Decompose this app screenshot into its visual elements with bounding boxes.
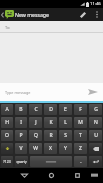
button[interactable]: B: [15, 104, 27, 115]
staticText: S: [64, 132, 67, 139]
button[interactable]: Type message: [0, 83, 82, 101]
staticText: B: [19, 106, 23, 113]
button[interactable]: N: [89, 117, 102, 128]
button[interactable]: G: [89, 104, 102, 115]
staticText: New message: [15, 11, 49, 18]
button[interactable]: X: [44, 143, 57, 154]
staticText: Q: [34, 132, 38, 139]
staticText: V: [19, 145, 23, 152]
staticText: D: [49, 106, 53, 113]
button[interactable]: Home: [38, 168, 64, 183]
button[interactable]: .: [74, 156, 87, 167]
staticText: P: [19, 132, 23, 139]
button[interactable]: U: [89, 130, 102, 141]
staticText: Y: [64, 145, 67, 152]
button[interactable]: To:: [0, 21, 103, 33]
staticText: R: [49, 132, 53, 139]
staticText: U: [94, 132, 98, 139]
button[interactable]: Shift: [1, 143, 13, 154]
button[interactable]: M: [74, 117, 87, 128]
staticText: C: [34, 106, 38, 113]
button[interactable]: qwerty: [15, 156, 28, 167]
button[interactable]: W: [29, 143, 42, 154]
button[interactable]: Q: [29, 130, 42, 141]
staticText: M: [78, 119, 83, 126]
button[interactable]: Hide keyboard: [86, 168, 103, 183]
staticText: I: [20, 119, 22, 126]
button[interactable]: Y: [59, 143, 72, 154]
button[interactable]: P: [15, 130, 27, 141]
staticText: .: [80, 158, 82, 165]
button[interactable]: K: [44, 117, 57, 128]
staticText: G: [94, 106, 98, 113]
button[interactable]: T: [74, 130, 87, 141]
staticText: Z: [79, 145, 82, 152]
button[interactable]: D: [44, 104, 57, 115]
staticText: ?123: [3, 159, 11, 164]
button[interactable]: O: [1, 130, 13, 141]
button[interactable]: Backspace: [89, 143, 102, 154]
button[interactable]: F: [74, 104, 87, 115]
button[interactable]: L: [59, 117, 72, 128]
staticText: 11:46: [90, 1, 101, 7]
button[interactable]: C: [29, 104, 42, 115]
button[interactable]: More options: [90, 8, 103, 21]
staticText: E: [64, 106, 67, 113]
other: Back: [1, 12, 4, 18]
button[interactable]: Enter: [89, 156, 102, 167]
button[interactable]: H: [1, 117, 13, 128]
button[interactable]: S: [59, 130, 72, 141]
button[interactable]: E: [59, 104, 72, 115]
staticText: K: [49, 119, 53, 126]
staticText: L: [64, 119, 67, 126]
staticText: To:: [5, 25, 11, 30]
staticText: Type message: [5, 90, 31, 95]
staticText: qwerty: [16, 160, 27, 164]
button[interactable]: J: [29, 117, 42, 128]
staticText: A: [5, 106, 9, 113]
staticText: F: [79, 106, 82, 113]
button[interactable]: I: [15, 117, 27, 128]
button[interactable]: Space: [30, 156, 72, 167]
staticText: T: [79, 132, 82, 139]
staticText: N: [94, 119, 98, 126]
staticText: W: [33, 145, 38, 152]
button[interactable]: V: [15, 143, 27, 154]
button[interactable]: Back: [0, 8, 14, 21]
staticText: X: [49, 145, 52, 152]
staticText: J: [35, 119, 37, 126]
button[interactable]: Recent apps: [64, 168, 90, 183]
button[interactable]: A: [1, 104, 13, 115]
staticText: H: [5, 119, 9, 126]
button[interactable]: Attach: [75, 8, 90, 21]
button[interactable]: Send: [82, 83, 103, 101]
button[interactable]: Back: [11, 168, 37, 183]
button[interactable]: R: [44, 130, 57, 141]
button[interactable]: ?123: [1, 156, 13, 167]
staticText: O: [5, 132, 9, 139]
button[interactable]: Z: [74, 143, 87, 154]
